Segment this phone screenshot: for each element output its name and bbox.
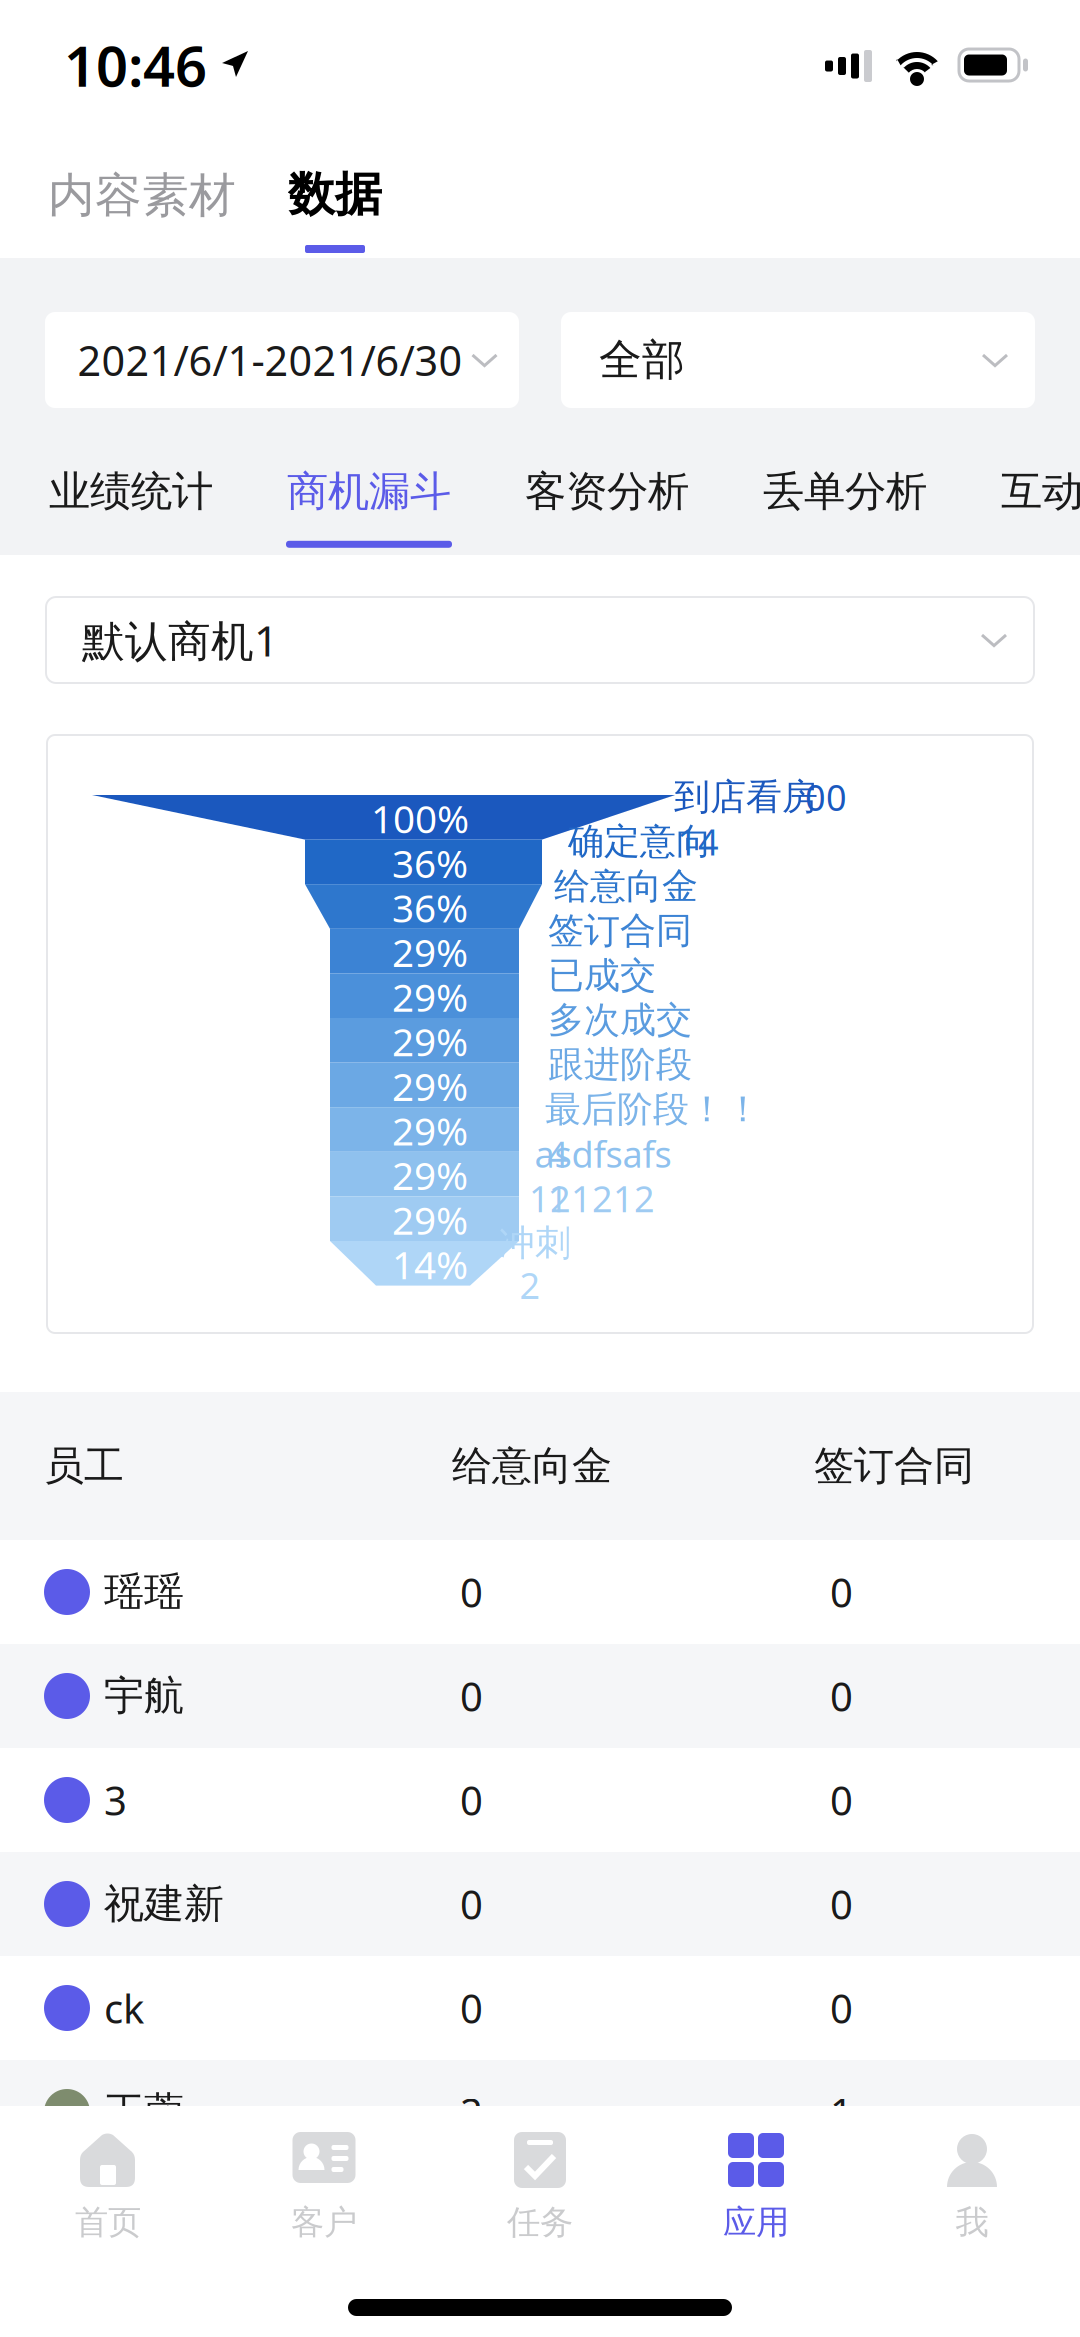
staticText: 员工: [44, 1441, 124, 1490]
staticText: 签订合同: [548, 909, 692, 953]
staticText: 给意向金: [452, 1441, 612, 1490]
staticText: 签订合同: [814, 1441, 974, 1490]
staticText: 我: [955, 2202, 988, 2243]
button[interactable]: 祝建新: [0, 1852, 1080, 1956]
button[interactable]: 2021/6/1-2021/6/30: [45, 312, 519, 408]
staticText: 29%: [392, 971, 468, 1022]
button[interactable]: 全部: [561, 312, 1035, 408]
button[interactable]: 王蓉: [0, 2060, 1080, 2164]
staticText: 0: [830, 1565, 853, 1618]
staticText: 29%: [392, 1016, 468, 1067]
staticText: 给意向金: [554, 864, 698, 908]
staticText: 0: [460, 1669, 483, 1722]
button[interactable]: 3: [0, 1748, 1080, 1852]
button[interactable]: 数据: [266, 166, 404, 258]
staticText: 0: [830, 1669, 853, 1722]
staticText: 29%: [392, 1149, 468, 1201]
staticText: 0: [830, 1877, 853, 1930]
button[interactable]: 我: [864, 2106, 1080, 2236]
staticText: 多次成交: [548, 998, 692, 1042]
staticText: ck: [104, 1981, 144, 2034]
staticText: 00: [805, 773, 847, 821]
staticText: 宇航: [104, 1671, 184, 1720]
button[interactable]: 丢单分析: [726, 408, 964, 548]
staticText: 121212: [529, 1174, 655, 1222]
button[interactable]: 瑶瑶: [0, 1540, 1080, 1644]
button[interactable]: 客户: [216, 2106, 432, 2236]
staticText: 确定意向: [568, 819, 712, 864]
staticText: 丢单分析: [763, 466, 927, 517]
staticText: 29%: [392, 926, 468, 978]
staticText: 应用: [723, 2202, 789, 2243]
staticText: 客户: [291, 2202, 357, 2243]
button[interactable]: 业绩统计: [12, 408, 250, 548]
staticText: 冲刺: [499, 1221, 571, 1265]
staticText: 首页: [75, 2202, 141, 2243]
button[interactable]: 商机漏斗: [250, 408, 488, 548]
button[interactable]: 任务: [432, 2106, 648, 2236]
staticText: 1: [547, 1174, 568, 1222]
button[interactable]: ck: [0, 1956, 1080, 2060]
button[interactable]: 默认商机1: [46, 597, 1034, 683]
staticText: asdfsafs: [534, 1130, 671, 1178]
staticText: 0: [460, 1981, 483, 2034]
staticText: 1: [830, 2085, 853, 2138]
staticText: 跟进阶段: [548, 1042, 692, 1087]
staticText: 王蓉: [104, 2087, 184, 2136]
staticText: 0: [460, 1565, 483, 1618]
staticText: 100%: [371, 793, 469, 844]
staticText: 14%: [392, 1239, 468, 1290]
staticText: 36%: [392, 837, 468, 888]
button[interactable]: 内容素材: [40, 167, 244, 258]
staticText: 2: [519, 1261, 540, 1309]
staticText: 0: [830, 1981, 853, 2034]
button[interactable]: 互动分析: [964, 408, 1080, 548]
staticText: 29%: [392, 1194, 468, 1245]
button[interactable]: 应用: [648, 2106, 864, 2236]
button[interactable]: 首页: [0, 2106, 216, 2236]
staticText: 客资分析: [525, 466, 689, 517]
staticText: 10:46: [64, 28, 207, 102]
staticText: 商机漏斗: [287, 466, 451, 517]
staticText: 最后阶段！！: [545, 1087, 761, 1131]
staticText: 2021/6/1-2021/6/30: [77, 333, 462, 387]
button[interactable]: 宇航: [0, 1644, 1080, 1748]
staticText: 2: [460, 2085, 483, 2138]
staticText: 到店看房: [674, 775, 818, 819]
staticText: 0: [830, 1773, 853, 1826]
staticText: 默认商机1: [82, 612, 278, 668]
staticText: 已成交: [548, 953, 656, 997]
staticText: 全部: [599, 334, 685, 386]
staticText: 29%: [392, 1060, 468, 1111]
staticText: 数据: [288, 166, 382, 223]
staticText: 瑶瑶: [104, 1567, 184, 1616]
staticText: 29%: [392, 1105, 468, 1156]
staticText: 36%: [392, 882, 468, 933]
staticText: 0: [460, 1877, 483, 1930]
staticText: 0: [460, 1773, 483, 1826]
staticText: 互动分析: [1001, 466, 1080, 517]
staticText: 任务: [507, 2202, 573, 2243]
staticText: 业绩统计: [49, 466, 213, 517]
staticText: 祝建新: [104, 1879, 224, 1928]
staticText: 内容素材: [48, 167, 236, 224]
staticText: 14: [677, 818, 719, 865]
staticText: 3: [104, 1773, 127, 1826]
button[interactable]: 客资分析: [488, 408, 726, 548]
staticText: 4: [547, 1130, 568, 1178]
